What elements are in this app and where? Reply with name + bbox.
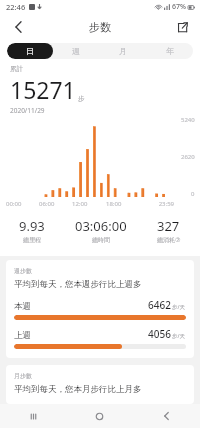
button[interactable]: 月: [99, 43, 146, 59]
button[interactable]: 9.93: [0, 217, 64, 244]
staticText: 6462: [148, 298, 171, 312]
staticText: 總時間: [92, 236, 110, 244]
staticText: 平均到每天，您本月步行比上月多: [14, 384, 142, 395]
staticText: 年: [166, 46, 174, 56]
staticText: 總消耗⑦: [157, 236, 181, 244]
staticText: 327: [157, 217, 180, 235]
staticText: 06:00: [39, 200, 72, 208]
staticText: 12:00: [72, 200, 106, 208]
staticText: 67%: [172, 2, 186, 12]
staticText: 5240: [181, 116, 195, 124]
staticText: 月: [119, 46, 127, 56]
button[interactable]: Recent apps: [0, 404, 66, 428]
button[interactable]: 年: [146, 43, 193, 59]
staticText: 總里程: [23, 236, 41, 244]
staticText: 步/天: [172, 332, 186, 340]
button[interactable]: Back: [133, 404, 200, 428]
staticText: 月步數: [14, 372, 32, 380]
button[interactable]: 週步數: [6, 260, 194, 358]
staticText: 週: [72, 46, 80, 56]
button[interactable]: Back: [4, 14, 32, 40]
button[interactable]: Share: [168, 14, 196, 40]
staticText: 9.93: [19, 217, 45, 235]
button[interactable]: 327: [137, 217, 200, 244]
staticText: 2020/11/29: [10, 106, 45, 115]
staticText: 2620: [181, 153, 195, 161]
staticText: 累計: [10, 65, 23, 73]
staticText: 週步數: [14, 267, 32, 275]
staticText: 上週: [14, 330, 31, 341]
staticText: 步: [78, 95, 85, 103]
staticText: 03:06:00: [75, 217, 127, 235]
button[interactable]: 週: [53, 43, 99, 59]
staticText: 步/天: [172, 303, 186, 311]
button[interactable]: 03:06:00: [64, 217, 137, 244]
staticText: 15271: [10, 74, 76, 105]
staticText: 18:00: [106, 200, 140, 208]
staticText: 4056: [148, 327, 171, 341]
button[interactable]: Home: [66, 404, 133, 428]
staticText: 本週: [14, 301, 31, 312]
staticText: 日: [26, 46, 34, 56]
button[interactable]: 日: [7, 43, 53, 59]
staticText: 平均到每天，您本週步行比上週多: [14, 279, 142, 290]
staticText: 步数: [89, 20, 111, 34]
staticText: 00:00: [6, 200, 39, 208]
button[interactable]: 月步數: [6, 365, 194, 404]
staticText: 22:46: [6, 2, 26, 12]
staticText: 0: [191, 190, 195, 198]
staticText: 23:59: [140, 200, 174, 208]
